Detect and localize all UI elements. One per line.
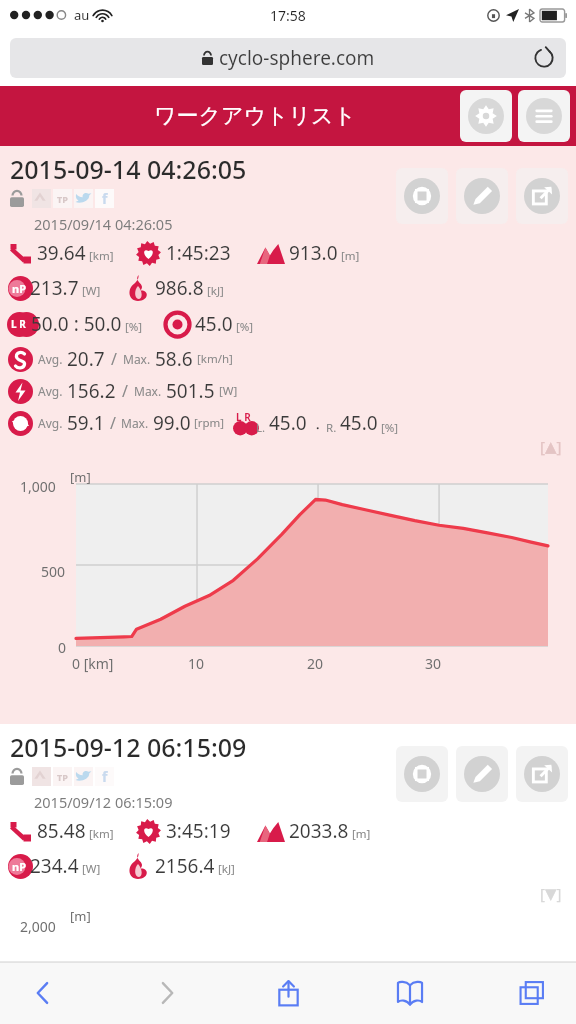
button[interactable]: Bookmarks [388,971,432,1015]
staticText: 2033.8 [289,818,349,844]
staticText: 501.5 [166,378,215,404]
staticText: [m] [341,248,360,264]
staticText: ワークアウトリスト [154,102,357,130]
staticText: [km] [89,248,114,264]
staticText: 85.48 [37,818,86,844]
staticText: / [111,348,117,370]
staticText: L R [11,317,26,331]
staticText: Max. [123,351,151,367]
staticText: [W] [82,283,101,299]
button[interactable]: Share [266,971,310,1015]
staticText: 10 [188,654,205,673]
staticText: [W] [219,383,238,399]
staticText: / [122,380,128,402]
staticText: 913.0 [289,240,338,266]
staticText: [m] [70,907,91,925]
staticText: 2015-09-14 04:26:05 [10,152,247,186]
staticText: [m] [70,468,91,486]
staticText: [▲] [540,436,562,456]
button[interactable]: 2015-09-12 06:15:09 [0,724,576,962]
staticText: R. [326,420,337,436]
button[interactable]: Forward [144,971,188,1015]
staticText: nP [12,281,26,296]
staticText: L. [256,420,266,436]
staticText: f [102,189,108,208]
staticText: 3:45:19 [166,818,231,844]
staticText: 50.0 : 50.0 [31,311,122,337]
button[interactable]: Edit [456,168,508,224]
button[interactable]: Edit [456,746,508,802]
staticText: 156.2 [67,378,116,404]
staticText: 2,000 [20,917,56,936]
staticText: Avg. [38,351,63,367]
button[interactable]: Back [22,971,66,1015]
staticText: 30 [425,654,442,673]
button[interactable]: cyclo-sphere.com [10,38,566,78]
button[interactable]: Map [396,746,448,802]
staticText: [m] [352,826,371,842]
staticText: L R [236,410,251,424]
staticText: TP [57,771,68,783]
button[interactable]: Menu [518,90,570,142]
staticText: [kJ] [218,861,235,877]
staticText: 2015/09/12 06:15:09 [34,792,173,812]
staticText: 45.0 [195,311,233,337]
staticText: [km] [89,826,114,842]
staticText: 39.64 [37,240,86,266]
staticText: [%] [125,319,143,335]
staticText: ・ [311,420,324,436]
staticText: Max. [134,383,162,399]
staticText: 20 [307,654,324,673]
button[interactable]: Share [516,746,568,802]
staticText: Avg. [38,383,63,399]
staticText: Max. [121,415,149,431]
staticText: [%] [236,319,254,335]
staticText: 2015/09/14 04:26:05 [34,214,173,234]
staticText: [W] [82,861,101,877]
staticText: [km/h] [197,351,233,367]
staticText: Avg. [38,415,63,431]
staticText: 1,000 [20,477,56,496]
staticText: 99.0 [153,410,191,436]
staticText: nP [12,859,26,874]
staticText: 17:58 [270,6,306,25]
staticText: 500 [41,562,66,581]
staticText: 1:45:23 [166,240,231,266]
staticText: 213.7 [30,275,79,301]
staticText: 986.8 [155,275,204,301]
staticText: 58.6 [155,346,193,372]
staticText: [%] [381,420,399,436]
staticText: / [110,412,116,434]
staticText: 0 [km] [72,654,114,673]
staticText: [kJ] [207,283,224,299]
staticText: 45.0 [269,410,307,436]
staticText: cyclo-sphere.com [219,45,375,71]
staticText: 59.1 [67,410,105,436]
staticText: 45.0 [340,410,378,436]
button[interactable]: Share [516,168,568,224]
button[interactable]: 2015-09-14 04:26:05 [0,146,576,724]
staticText: 2156.4 [155,853,215,879]
staticText: 0 [58,638,67,657]
staticText: 20.7 [67,346,105,372]
staticText: TP [57,193,68,205]
staticText: f [102,767,108,786]
staticText: au [74,6,90,24]
staticText: [rpm] [194,415,225,431]
button[interactable]: Map [396,168,448,224]
button[interactable]: Settings [460,90,512,142]
button[interactable]: Reload [532,46,556,70]
button[interactable]: Tabs [510,971,554,1015]
staticText: 2015-09-12 06:15:09 [10,730,247,764]
staticText: 234.4 [30,853,79,879]
staticText: [▼] [540,883,562,903]
